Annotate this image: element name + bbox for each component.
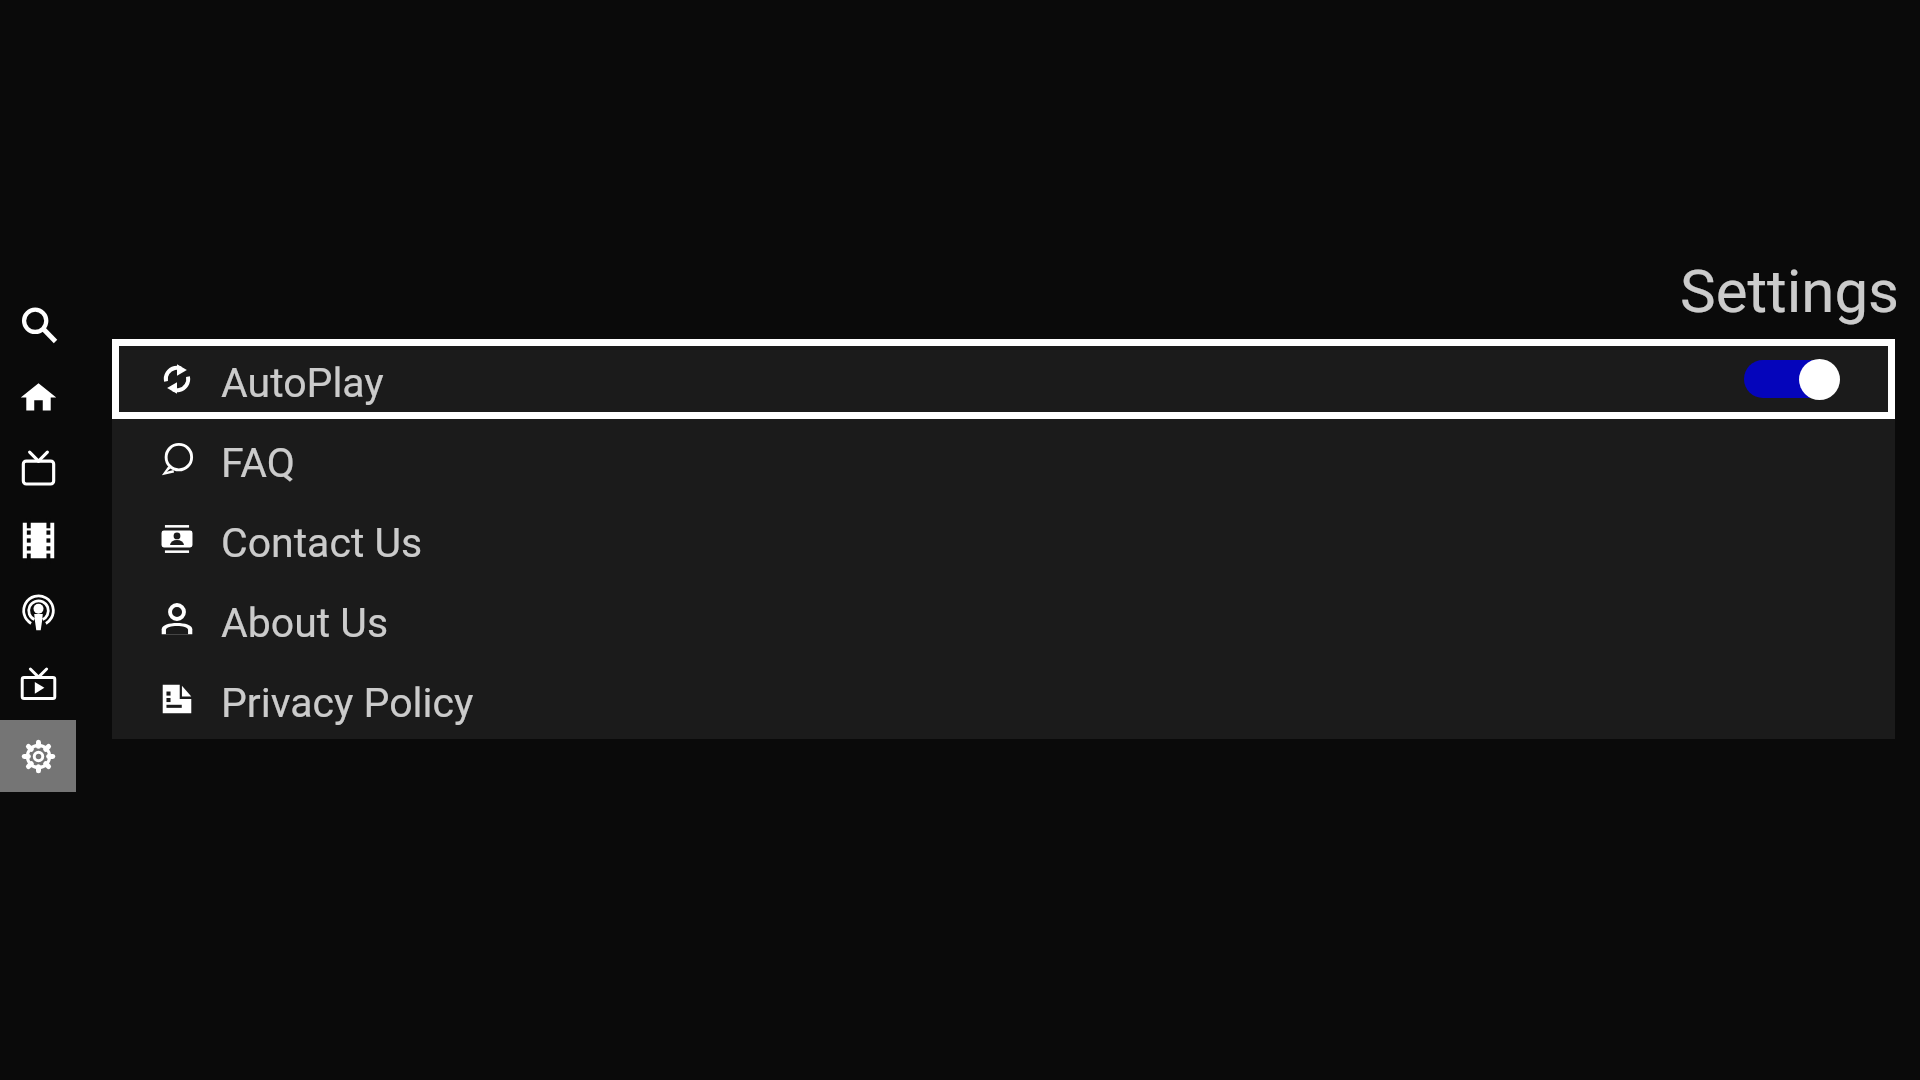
staticText: Contact Us — [221, 519, 423, 567]
button[interactable]: Search — [0, 288, 76, 360]
button[interactable]: Podcasts — [0, 576, 76, 648]
staticText: FAQ — [221, 439, 295, 487]
button[interactable]: AutoPlay — [112, 339, 1895, 419]
button[interactable]: Home — [0, 360, 76, 432]
button[interactable]: Contact Us — [112, 499, 1895, 579]
staticText: AutoPlay — [221, 359, 384, 407]
button[interactable]: Live TV — [0, 432, 76, 504]
button[interactable]: Shows — [0, 648, 76, 720]
staticText: Settings — [1680, 256, 1900, 326]
button[interactable]: AutoPlay toggle — [1744, 358, 1840, 400]
staticText: About Us — [221, 599, 389, 647]
staticText: Privacy Policy — [221, 679, 474, 727]
button[interactable]: FAQ — [112, 419, 1895, 499]
button[interactable]: Settings — [0, 720, 76, 792]
button[interactable]: About Us — [112, 579, 1895, 659]
button[interactable]: Privacy Policy — [112, 659, 1895, 739]
button[interactable]: Movies — [0, 504, 76, 576]
